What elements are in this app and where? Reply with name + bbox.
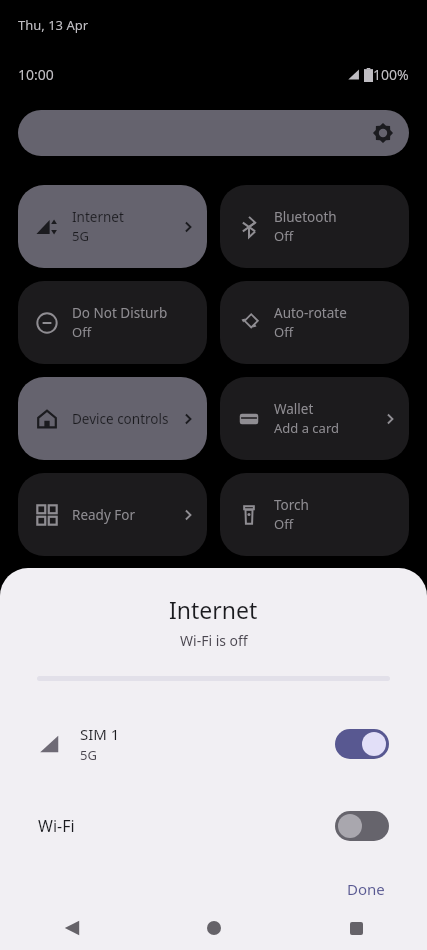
staticText: Wallet [274, 400, 314, 418]
button[interactable]: Bluetooth [220, 185, 409, 268]
staticText: Bluetooth [274, 208, 337, 226]
staticText: Off [274, 323, 294, 341]
staticText: Torch [274, 496, 309, 514]
button[interactable]: On [335, 729, 389, 759]
staticText: Add a card [274, 419, 339, 437]
button[interactable]: Wi-Fi [0, 804, 427, 848]
button[interactable]: Recents [285, 906, 427, 950]
staticText: 5G [80, 746, 97, 764]
button[interactable]: Torch [220, 473, 409, 556]
button[interactable]: Ready For [18, 473, 207, 556]
button[interactable]: Brightness [18, 110, 409, 156]
button[interactable]: Device controls [18, 377, 207, 460]
staticText: Internet [72, 208, 124, 226]
staticText: 100% [373, 65, 409, 84]
button[interactable]: Auto-rotate [220, 281, 409, 364]
staticText: Internet [169, 594, 258, 625]
staticText: Off [72, 323, 92, 341]
button[interactable]: Do Not Disturb [18, 281, 207, 364]
staticText: Off [274, 515, 294, 533]
staticText: Device controls [72, 410, 169, 428]
staticText: SIM 1 [80, 724, 120, 744]
button[interactable]: Home [143, 906, 285, 950]
button[interactable]: Back [0, 906, 143, 950]
staticText: Done [347, 879, 385, 899]
staticText: 5G [72, 227, 89, 245]
staticText: Off [274, 227, 294, 245]
staticText: Auto-rotate [274, 304, 347, 322]
staticText: Wi-Fi is off [180, 631, 248, 650]
button[interactable]: Wallet [220, 377, 409, 460]
button[interactable]: Off [335, 811, 389, 841]
staticText: 10:00 [18, 65, 54, 84]
button[interactable]: Done [335, 874, 397, 904]
staticText: Do Not Disturb [72, 304, 168, 322]
staticText: Wi-Fi [38, 815, 75, 837]
staticText: Ready For [72, 506, 136, 524]
staticText: Thu, 13 Apr [18, 16, 89, 34]
button[interactable]: SIM 1 [0, 716, 427, 772]
button[interactable]: Internet [18, 185, 207, 268]
